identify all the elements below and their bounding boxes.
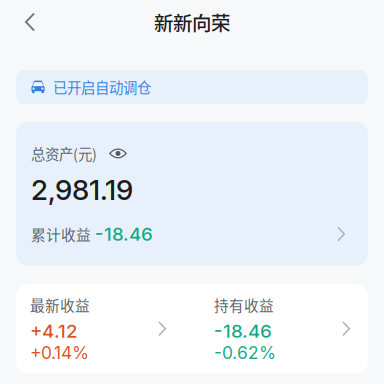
- button[interactable]: 持有收益: [192, 294, 354, 363]
- staticText: -18.46: [95, 223, 153, 245]
- staticText: 已开启自动调仓: [53, 77, 151, 97]
- staticText: +4.12: [30, 320, 78, 342]
- staticText: -18.46: [214, 320, 272, 342]
- staticText: 持有收益: [214, 294, 274, 315]
- staticText: 累计收益: [31, 223, 91, 245]
- button[interactable]: 已开启自动调仓: [16, 70, 368, 104]
- button[interactable]: 最新收益: [30, 294, 192, 363]
- staticText: 总资产(元): [31, 143, 97, 164]
- button[interactable]: Back: [0, 0, 52, 44]
- button[interactable]: 总资产(元): [16, 122, 368, 265]
- staticText: 2,981.19: [31, 173, 133, 207]
- staticText: -0.62%: [214, 342, 276, 363]
- staticText: 新新向荣: [154, 8, 230, 36]
- staticText: 最新收益: [30, 294, 90, 315]
- staticText: +0.14%: [30, 342, 89, 363]
